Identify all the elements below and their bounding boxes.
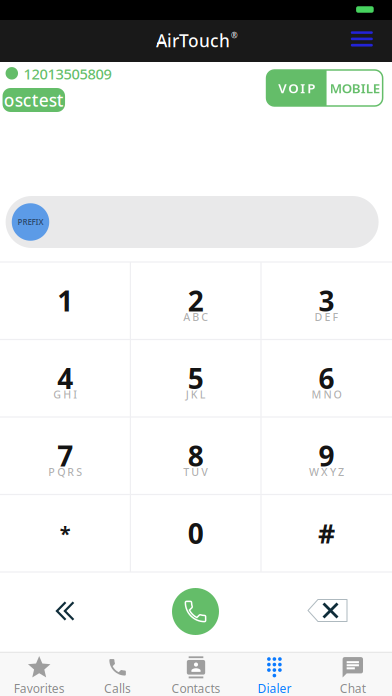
staticText: PREFIX [17,217,43,227]
staticText: P Q R S [48,465,82,479]
button[interactable]: 4 [0,340,130,417]
staticText: G H I [53,387,77,401]
button[interactable]: 6 [261,340,391,417]
staticText: Contacts [171,680,220,696]
staticText: 6 [318,360,334,397]
staticText: 0 [188,515,204,552]
button[interactable]: MOBILE [327,70,383,106]
staticText: 9 [318,437,334,474]
staticText: 4 [57,360,73,397]
button[interactable]: 0 [131,495,261,572]
button[interactable]: # [261,495,391,572]
button[interactable]: Contacts [157,652,235,696]
staticText: Chat [340,680,366,696]
staticText: 7 [57,437,73,474]
staticText: Favorites [14,680,65,696]
staticText: ® [231,30,238,41]
button[interactable]: Hide keypad [35,586,95,636]
button[interactable]: Chat [314,652,392,696]
staticText: * [60,520,71,547]
button[interactable]: 1 [0,262,130,339]
button[interactable]: 9 [261,417,391,494]
staticText: Calls [104,680,131,696]
button[interactable]: Delete [299,585,355,635]
staticText: T U V [183,465,208,479]
staticText: V O I P [278,79,315,97]
staticText: 8 [188,437,204,474]
staticText: Dialer [257,680,291,696]
button[interactable]: * [0,495,130,572]
staticText: 1 [57,282,73,319]
staticText: 12013505809 [23,64,111,84]
button[interactable]: 7 [0,417,130,494]
button[interactable]: Menu [345,26,379,52]
button[interactable]: Call [172,588,219,635]
staticText: AirTouch [156,29,230,52]
staticText: osctest [4,88,64,111]
staticText: D E F [314,310,338,324]
staticText: M N O [311,387,341,401]
staticText: # [318,515,335,551]
staticText: A B C [183,310,208,324]
button[interactable]: Dialer [235,652,314,696]
staticText: 3 [318,282,334,319]
button[interactable]: 5 [131,340,261,417]
staticText: 5 [188,360,204,397]
button[interactable]: 3 [261,262,391,339]
staticText: J K L [186,387,206,401]
button[interactable]: 8 [131,417,261,494]
button[interactable]: Calls [78,652,157,696]
staticText: W X Y Z [309,465,344,479]
staticText: 2 [188,282,204,319]
button[interactable]: 2 [131,262,261,339]
button[interactable]: V O I P [267,70,327,106]
button[interactable]: osctest [2,88,65,112]
button[interactable]: Favorites [0,652,78,696]
staticText: MOBILE [330,79,380,97]
button[interactable]: PREFIX [12,203,49,241]
